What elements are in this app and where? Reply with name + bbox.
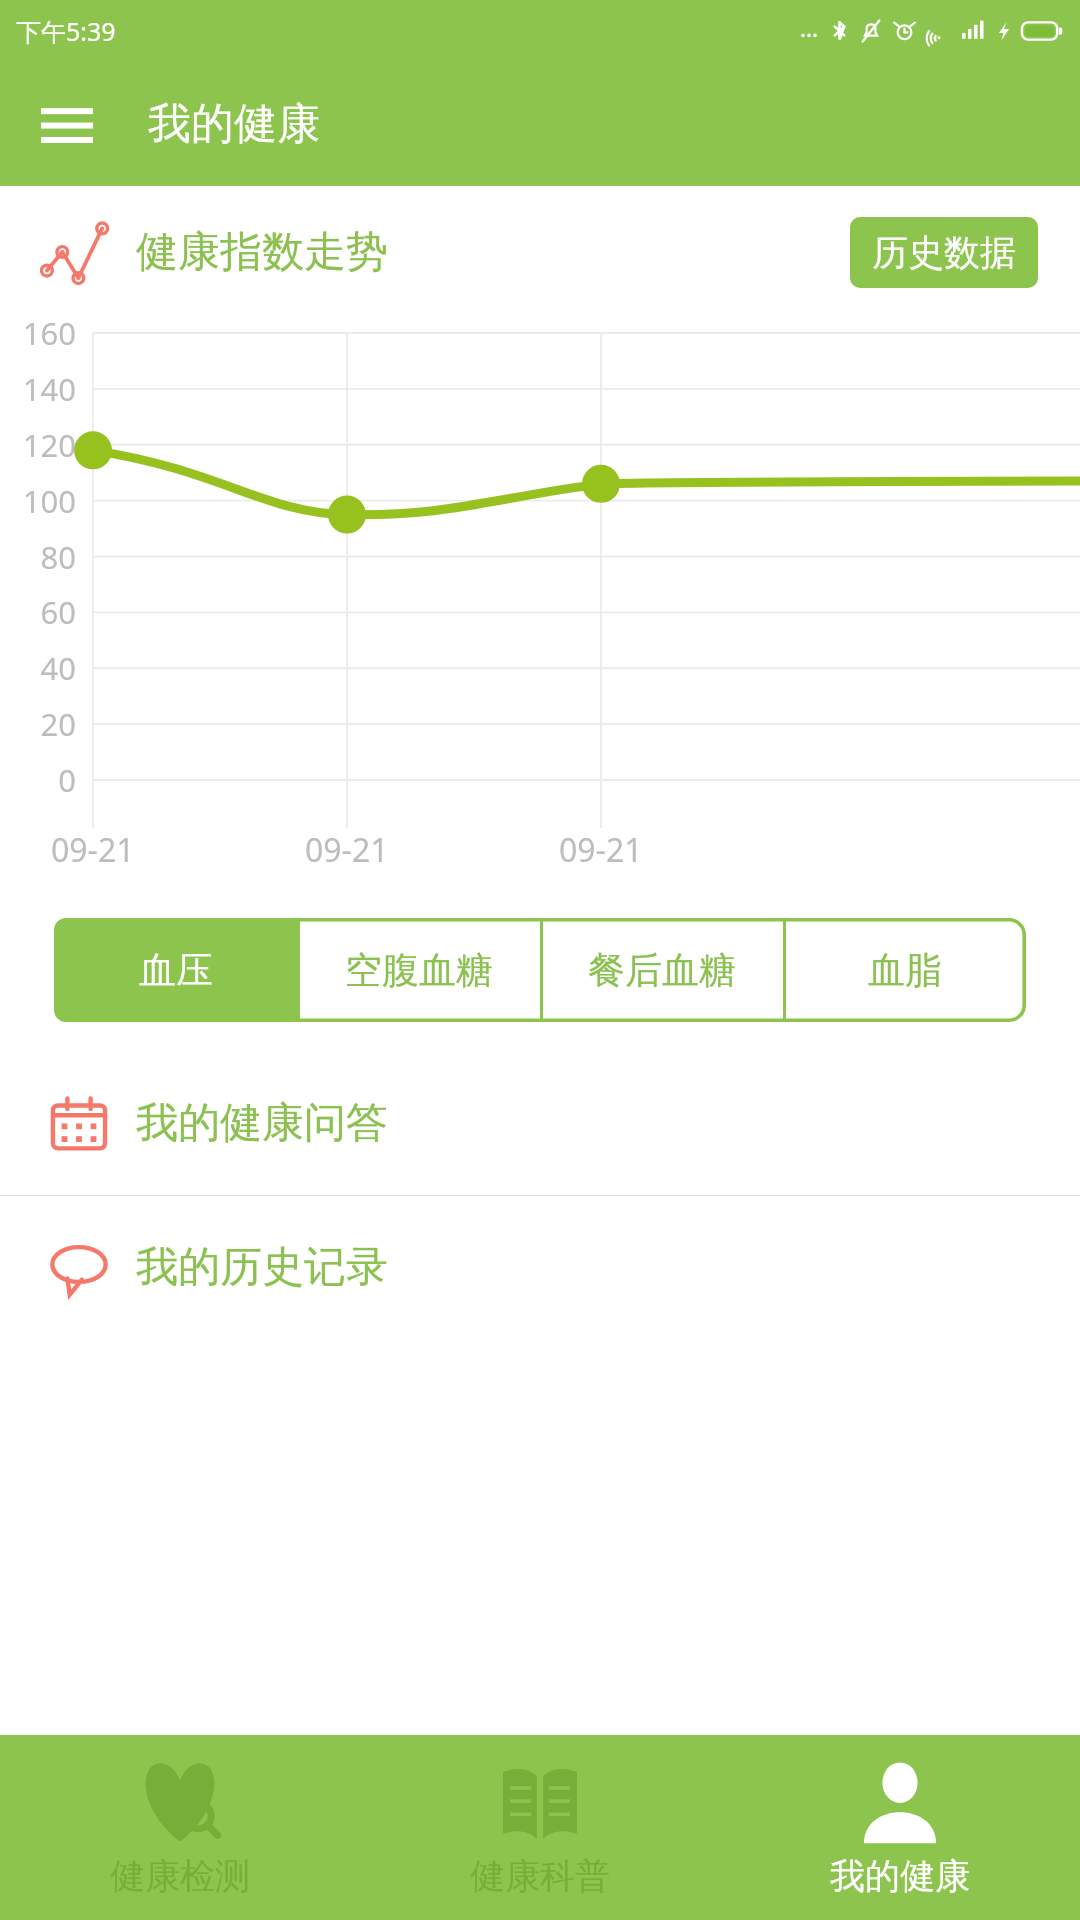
staticText: 09-21 (305, 828, 389, 872)
staticText: 健康科普 (470, 1854, 610, 1898)
staticText: 我的历史记录 (136, 1241, 388, 1294)
button[interactable]: 血脂 (783, 918, 1026, 1022)
staticText: 60 (40, 591, 76, 633)
staticText: 09-21 (559, 828, 643, 872)
staticText: 血压 (139, 947, 213, 994)
staticText: 09-21 (51, 828, 135, 872)
staticText: 历史数据 (872, 230, 1016, 275)
staticText: 餐后血糖 (588, 947, 736, 994)
staticText: 健康指数走势 (136, 226, 388, 279)
button[interactable]: 空腹血糖 (297, 918, 540, 1022)
staticText: 我的健康 (830, 1854, 970, 1898)
staticText: 160 (22, 312, 76, 354)
button[interactable]: Menu (30, 87, 104, 161)
button[interactable]: 健康科普 (360, 1735, 720, 1920)
staticText: 我的健康 (148, 97, 320, 151)
button[interactable]: 我的健康问答 (0, 1052, 1080, 1195)
button[interactable]: 健康检测 (0, 1735, 360, 1920)
staticText: 空腹血糖 (345, 947, 493, 994)
staticText: 20 (40, 703, 76, 745)
staticText: 健康检测 (110, 1854, 250, 1898)
staticText: 0 (58, 759, 76, 801)
staticText: 我的健康问答 (136, 1097, 388, 1150)
staticText: 血脂 (868, 947, 942, 994)
button[interactable]: 血压 (54, 918, 297, 1022)
staticText: 下午5:39 (16, 14, 116, 48)
button[interactable]: 历史数据 (850, 217, 1038, 288)
button[interactable]: 餐后血糖 (540, 918, 783, 1022)
staticText: 80 (40, 536, 76, 578)
button[interactable]: 我的历史记录 (0, 1196, 1080, 1339)
staticText: 100 (22, 480, 76, 522)
staticText: 140 (22, 368, 76, 410)
staticText: 40 (40, 647, 76, 689)
staticText: 120 (22, 424, 76, 466)
button[interactable]: 我的健康 (720, 1735, 1080, 1920)
